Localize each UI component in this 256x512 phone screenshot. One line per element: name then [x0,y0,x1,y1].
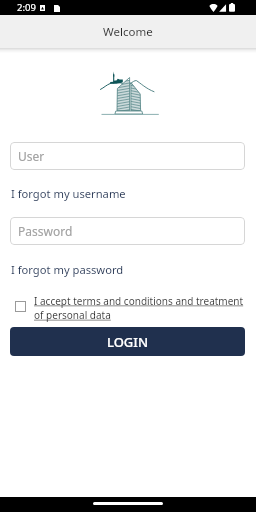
staticText: Welcome [103,24,153,40]
button[interactable]: User [10,142,245,170]
staticText: Password [18,223,73,239]
button[interactable]: I forgot my username [11,186,126,201]
button[interactable]: I accept terms and conditions and treatm… [15,294,248,322]
staticText: LOGIN [107,333,149,351]
button[interactable]: LOGIN [10,327,245,356]
button[interactable]: Password [10,217,245,245]
staticText: I accept terms and conditions and treatm… [34,294,248,322]
staticText: I forgot my password [11,262,124,277]
staticText: User [18,148,45,164]
button[interactable]: I forgot my password [11,262,124,277]
staticText: I forgot my username [11,186,126,201]
staticText: 2:09 [17,1,36,14]
